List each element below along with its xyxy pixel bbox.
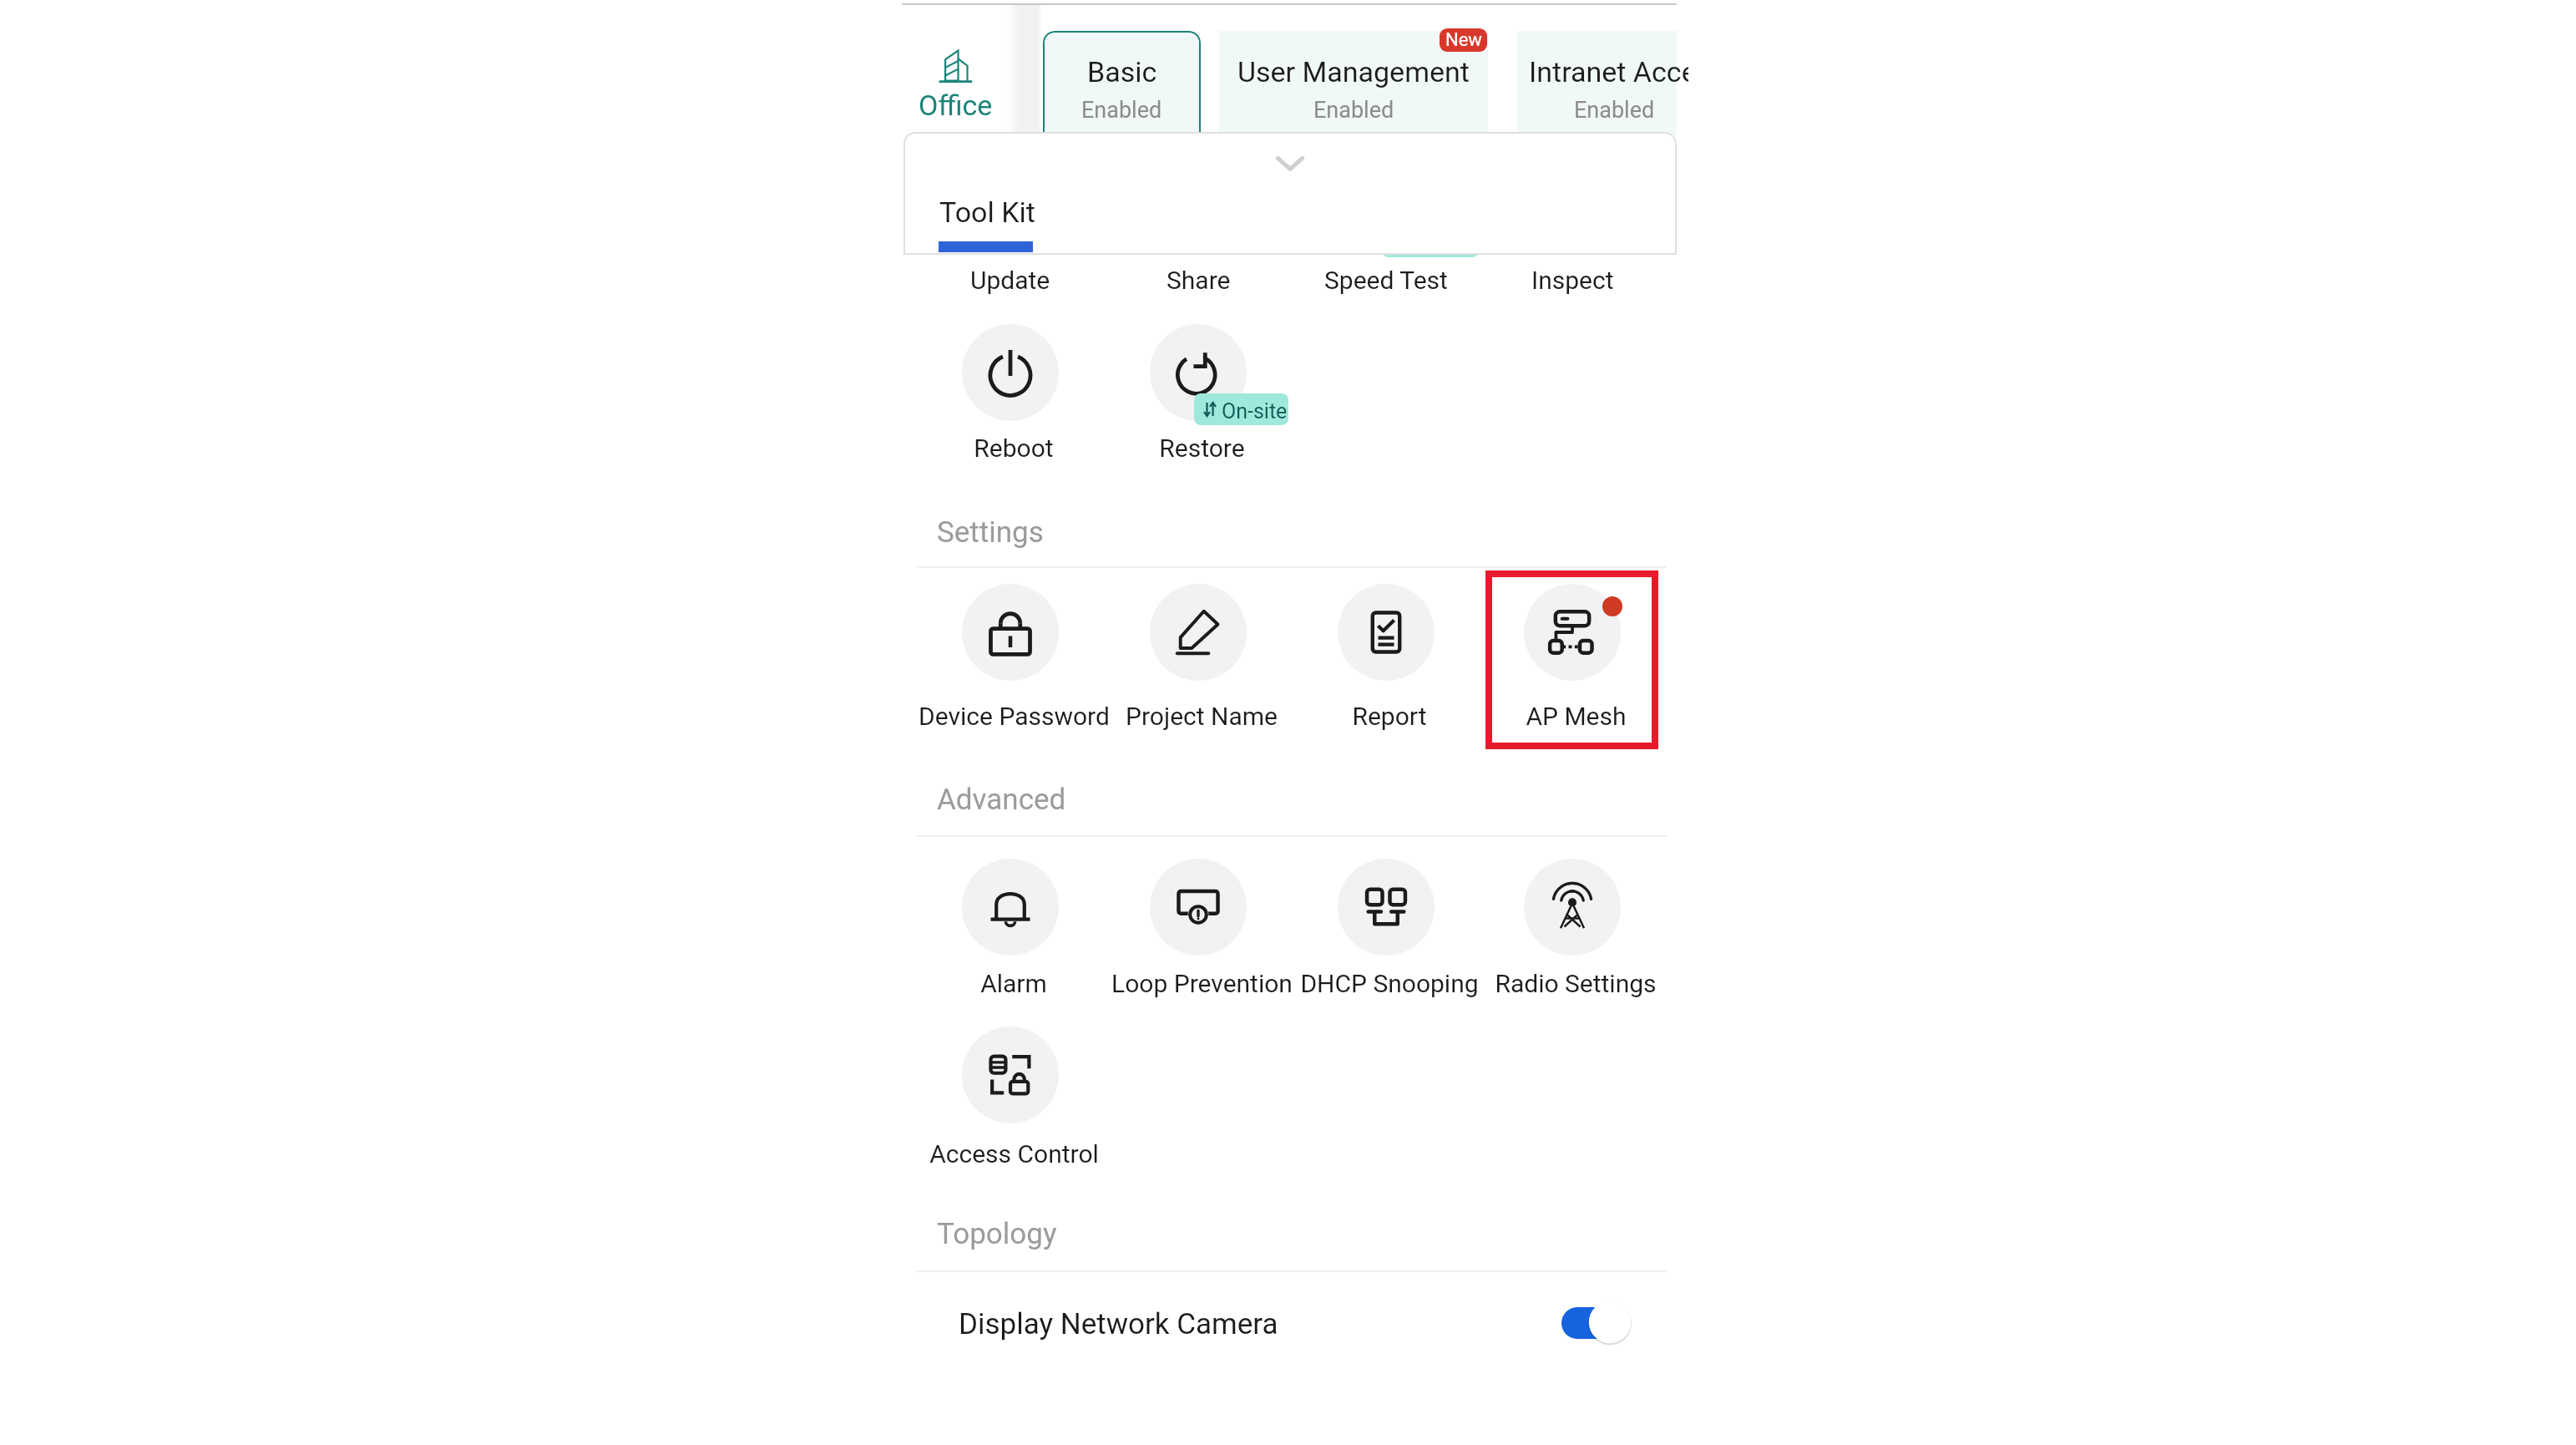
button[interactable]: Radio Settings (1480, 852, 1664, 1004)
button[interactable]: Basic (1043, 31, 1201, 136)
staticText: DHCP Snooping (1300, 969, 1479, 998)
staticText: AP Mesh (1526, 702, 1627, 731)
button[interactable]: AP Mesh (1480, 577, 1664, 737)
staticText: Access Control (929, 1139, 1099, 1169)
staticText: On-site (1222, 399, 1288, 423)
button[interactable]: Alarm (919, 852, 1102, 1004)
staticText: Intranet Acce (1529, 55, 1688, 89)
staticText: Office (919, 89, 993, 122)
staticText: Topology (937, 1217, 1057, 1251)
staticText: Loop Prevention (1111, 969, 1293, 998)
button[interactable]: Device Password (919, 577, 1102, 737)
button[interactable]: Restore (1106, 317, 1290, 469)
staticText: Radio Settings (1495, 969, 1657, 998)
staticText: Project Name (1126, 702, 1278, 731)
staticText: Alarm (980, 969, 1047, 998)
staticText: Advanced (937, 783, 1066, 817)
button[interactable]: Intranet Acce (1517, 31, 1677, 136)
staticText: Enabled (1313, 97, 1394, 124)
button[interactable]: Office site (915, 30, 995, 130)
staticText: Device Password (919, 702, 1110, 731)
button[interactable]: Report (1294, 577, 1478, 737)
button[interactable]: Loop Prevention (1106, 852, 1290, 1004)
staticText: Speed Test (1324, 266, 1448, 295)
staticText: Settings (937, 515, 1044, 550)
staticText: Enabled (1574, 97, 1655, 124)
staticText: Update (970, 266, 1050, 295)
button[interactable]: Reboot (919, 317, 1102, 469)
button[interactable]: Display Network Camera (917, 1272, 1667, 1364)
button[interactable]: Access Control (919, 1020, 1102, 1174)
staticText: Reboot (974, 433, 1054, 463)
staticText: Tool Kit (939, 195, 1035, 229)
button[interactable]: DHCP Snooping (1294, 852, 1478, 1004)
staticText: Display Network Camera (959, 1307, 1278, 1341)
staticText: User Management (1237, 55, 1470, 89)
staticText: Inspect (1531, 266, 1614, 295)
staticText: New (1445, 29, 1482, 51)
button[interactable]: User Management (1219, 31, 1488, 136)
staticText: Report (1352, 702, 1427, 731)
staticText: Share (1167, 266, 1231, 295)
staticText: Enabled (1081, 97, 1162, 124)
staticText: Basic (1087, 55, 1157, 89)
button[interactable]: Display Network Camera toggle (1561, 1300, 1632, 1345)
button[interactable]: Project Name (1106, 577, 1290, 737)
staticText: Restore (1159, 433, 1245, 463)
